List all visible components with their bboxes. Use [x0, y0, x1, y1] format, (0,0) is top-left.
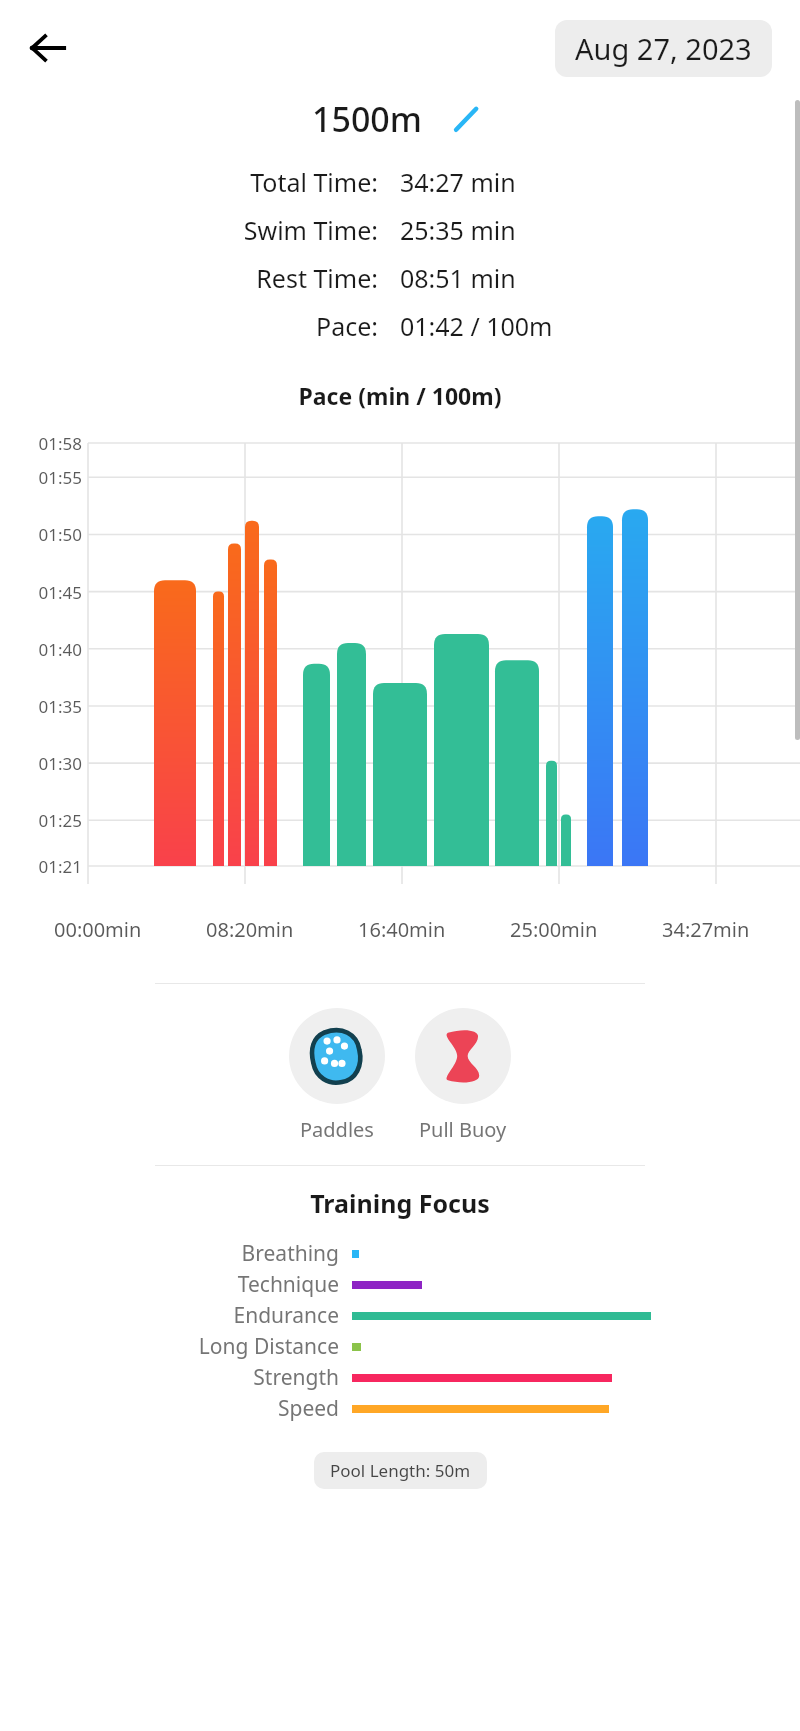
staticText: 01:30 — [0, 752, 82, 775]
staticText: 01:45 — [0, 581, 82, 604]
staticText: Strength — [0, 1363, 339, 1392]
button[interactable]: Aug 27, 2023 — [555, 20, 772, 77]
staticText: Training Focus — [0, 1186, 800, 1220]
staticText: 34:27min — [662, 916, 750, 943]
button[interactable]: Pool Length: 50m — [314, 1452, 487, 1489]
button[interactable]: Back — [18, 18, 78, 78]
staticText: 01:25 — [0, 809, 82, 832]
button[interactable]: Pull Buoy — [411, 1008, 515, 1143]
staticText: 25:35 min — [400, 213, 516, 247]
staticText: Speed — [0, 1394, 339, 1423]
staticText: Rest Time: — [0, 261, 378, 295]
staticText: 1500m — [312, 96, 422, 142]
staticText: Breathing — [0, 1239, 339, 1268]
staticText: 01:42 / 100m — [400, 309, 553, 343]
staticText: 01:40 — [0, 638, 82, 661]
staticText: 25:00min — [510, 916, 598, 943]
staticText: Pace (min / 100m) — [0, 380, 800, 411]
staticText: Total Time: — [0, 165, 378, 199]
staticText: Swim Time: — [0, 213, 378, 247]
staticText: Aug 27, 2023 — [575, 29, 752, 68]
staticText: Pool Length: 50m — [330, 1459, 471, 1482]
staticText: Pace: — [0, 309, 378, 343]
staticText: 08:20min — [206, 916, 294, 943]
staticText: Technique — [0, 1270, 339, 1299]
staticText: Long Distance — [0, 1332, 339, 1361]
button[interactable]: Paddles — [285, 1008, 389, 1143]
staticText: 01:58 — [0, 432, 82, 455]
staticText: 01:21 — [0, 855, 82, 878]
other: Paddles — [306, 1025, 368, 1087]
staticText: 01:55 — [0, 466, 82, 489]
button[interactable]: Edit — [444, 97, 488, 141]
staticText: Pull Buoy — [419, 1116, 507, 1143]
staticText: 34:27 min — [400, 165, 516, 199]
staticText: 08:51 min — [400, 261, 516, 295]
staticText: 01:35 — [0, 695, 82, 718]
other: Pull Buoy — [434, 1027, 492, 1085]
staticText: 01:50 — [0, 523, 82, 546]
staticText: Endurance — [0, 1301, 339, 1330]
staticText: 16:40min — [358, 916, 446, 943]
staticText: Paddles — [300, 1116, 374, 1143]
staticText: 00:00min — [54, 916, 142, 943]
